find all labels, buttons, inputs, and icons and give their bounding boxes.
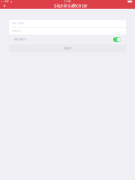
staticText: Mail Name bbox=[12, 22, 24, 25]
staticText: Sign in SafeCircle bbox=[54, 3, 87, 8]
staticText: Keep Sign in bbox=[14, 38, 26, 41]
button[interactable]: Back bbox=[0, 3, 10, 9]
staticText: Password bbox=[12, 30, 21, 32]
staticText: •••• AT&T bbox=[1, 0, 9, 3]
staticText: 9:41 AM bbox=[64, 0, 71, 3]
staticText: Sign in bbox=[64, 47, 71, 50]
button[interactable]: Keep Sign in bbox=[9, 34, 126, 44]
button[interactable]: Sign in bbox=[9, 44, 126, 52]
